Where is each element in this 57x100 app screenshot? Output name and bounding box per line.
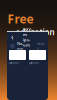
staticText: ‹ — [11, 32, 13, 42]
staticText: Name — [17, 41, 23, 51]
button[interactable]: Back — [9, 34, 15, 40]
staticText: Free — [7, 11, 33, 27]
staticText: education — [15, 27, 54, 37]
staticText: caption — [9, 61, 19, 64]
staticText: detail — [37, 41, 45, 51]
staticText: caption — [29, 61, 39, 64]
staticText: Lorem ipsum — [23, 26, 32, 48]
